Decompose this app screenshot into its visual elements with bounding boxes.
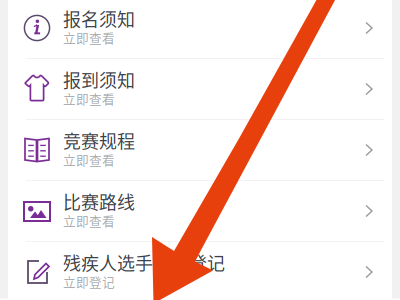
button[interactable]: 报名须知 bbox=[8, 0, 392, 59]
staticText: 立即查看 bbox=[63, 211, 115, 230]
staticText: 立即查看 bbox=[63, 89, 115, 108]
staticText: 报名须知 bbox=[63, 5, 135, 31]
staticText: 立即查看 bbox=[63, 150, 115, 169]
button[interactable]: 比赛路线 bbox=[8, 181, 392, 242]
staticText: 残疾人选手报名登记 bbox=[63, 249, 225, 275]
staticText: 立即查看 bbox=[63, 28, 115, 47]
staticText: 立即登记 bbox=[63, 272, 115, 291]
button[interactable]: 残疾人选手报名登记 bbox=[8, 242, 392, 300]
staticText: 比赛路线 bbox=[63, 188, 135, 214]
button[interactable]: 竞赛规程 bbox=[8, 120, 392, 181]
staticText: 竞赛规程 bbox=[63, 127, 135, 153]
staticText: 报到须知 bbox=[63, 66, 135, 92]
button[interactable]: 报到须知 bbox=[8, 59, 392, 120]
